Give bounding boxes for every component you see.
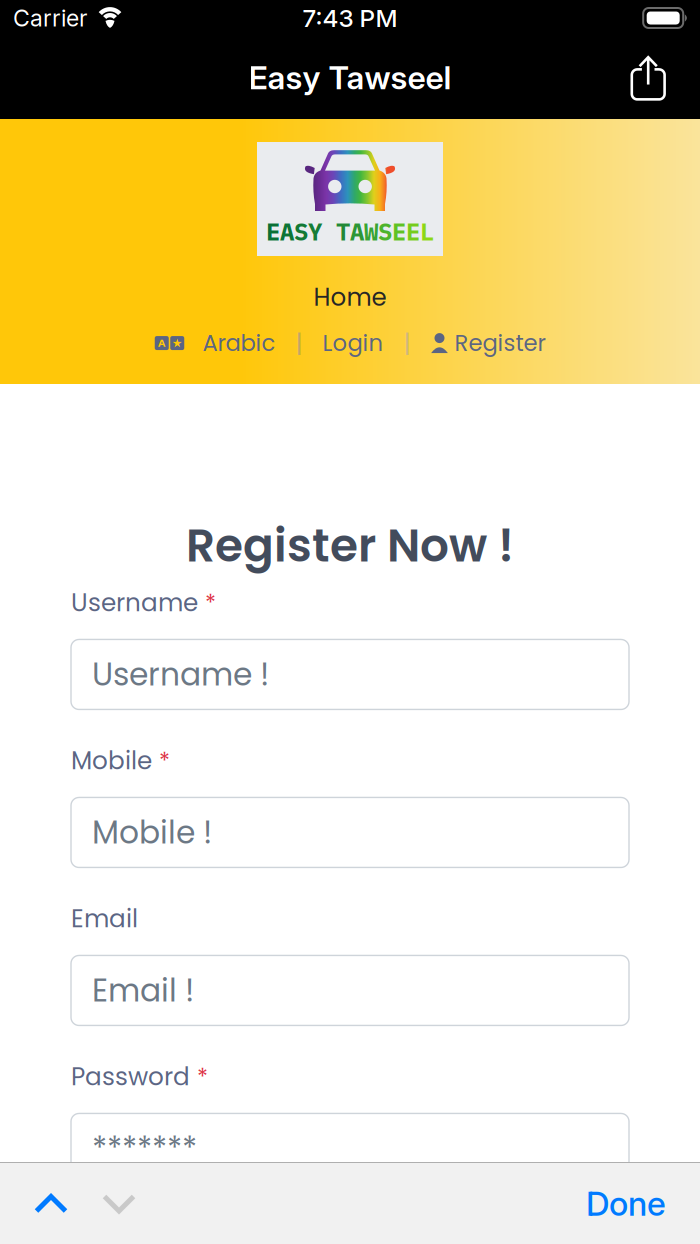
staticText: ★: [172, 336, 183, 350]
button[interactable]: Done: [574, 1169, 678, 1238]
staticText: *: [205, 587, 216, 619]
staticText: Login: [322, 327, 383, 359]
staticText: Home: [313, 280, 386, 314]
button[interactable]: *******: [71, 1113, 629, 1183]
staticText: Y: [308, 216, 322, 247]
staticText: [322, 216, 336, 247]
button[interactable]: A: [154, 327, 275, 359]
staticText: |: [403, 325, 410, 361]
staticText: S: [294, 216, 308, 247]
staticText: Register Now !: [186, 514, 514, 577]
button[interactable]: Mobile !: [71, 797, 629, 867]
staticText: Carrier: [13, 4, 87, 32]
button[interactable]: Login: [322, 327, 383, 359]
staticText: *******: [92, 1126, 197, 1170]
staticText: Done: [586, 1183, 666, 1224]
staticText: |: [295, 325, 302, 361]
staticText: A: [158, 336, 166, 350]
button[interactable]: Next: [85, 1175, 153, 1232]
staticText: Register: [454, 327, 545, 359]
staticText: A: [350, 216, 364, 247]
staticText: Username !: [92, 652, 269, 696]
staticText: A: [280, 216, 294, 247]
staticText: S: [378, 216, 392, 247]
staticText: *: [197, 1061, 208, 1093]
staticText: Email: [71, 901, 138, 936]
staticText: 7:43 PM: [302, 3, 397, 33]
staticText: Password: [71, 1059, 190, 1094]
staticText: Mobile: [71, 743, 152, 778]
staticText: T: [336, 216, 350, 247]
staticText: Email !: [92, 968, 194, 1012]
button[interactable]: Share: [630, 55, 666, 100]
button[interactable]: Register: [430, 327, 545, 359]
staticText: E: [392, 216, 406, 247]
staticText: Arabic: [202, 327, 275, 359]
staticText: L: [420, 216, 434, 247]
staticText: E: [266, 216, 280, 247]
staticText: Username: [71, 585, 198, 620]
staticText: Easy Tawseel: [248, 58, 451, 97]
staticText: *: [159, 745, 170, 777]
button[interactable]: Username !: [71, 639, 629, 709]
staticText: E: [406, 216, 420, 247]
button[interactable]: Email !: [71, 955, 629, 1025]
staticText: Mobile !: [92, 810, 212, 854]
button[interactable]: Previous: [17, 1175, 85, 1232]
staticText: W: [364, 216, 378, 247]
